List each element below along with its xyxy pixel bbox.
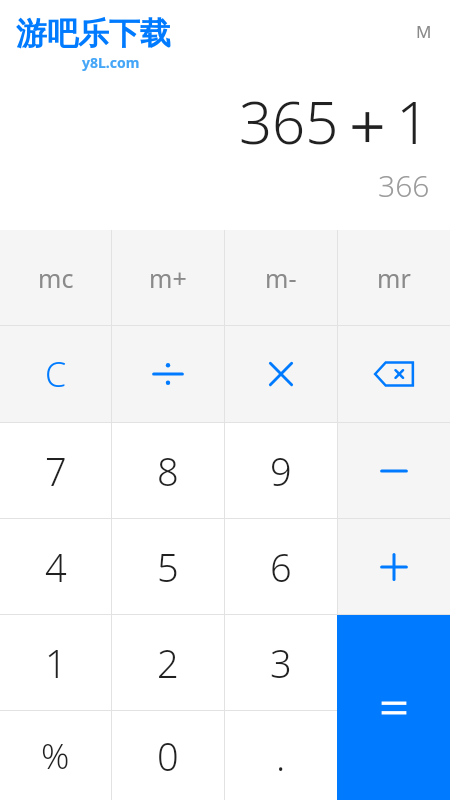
button[interactable]: Plus — [338, 519, 450, 614]
button[interactable]: 1 — [0, 615, 111, 710]
staticText: 365＋1 — [239, 82, 430, 161]
staticText: 0 — [157, 730, 179, 782]
staticText: 8 — [157, 445, 179, 497]
staticText: 9 — [270, 445, 292, 497]
button[interactable]: 5 — [112, 519, 224, 614]
button[interactable]: 3 — [225, 615, 337, 710]
button[interactable]: m+ — [112, 230, 224, 325]
staticText: 4 — [45, 541, 67, 593]
staticText: 366 — [378, 165, 430, 206]
button[interactable]: Backspace — [338, 326, 450, 422]
staticText: 5 — [157, 541, 179, 593]
button[interactable]: Equals — [337, 615, 450, 800]
button[interactable]: C — [0, 326, 111, 422]
button[interactable]: mc — [0, 230, 111, 325]
staticText: y8L.com — [82, 53, 140, 72]
staticText: . — [276, 730, 286, 782]
staticText: 6 — [270, 541, 292, 593]
staticText: 2 — [157, 637, 179, 689]
button[interactable]: % — [0, 711, 111, 800]
button[interactable]: . — [225, 711, 337, 800]
staticText: % — [41, 732, 70, 780]
staticText: M — [416, 20, 432, 43]
button[interactable]: Multiply — [225, 326, 337, 422]
button[interactable]: 6 — [225, 519, 337, 614]
button[interactable]: 4 — [0, 519, 111, 614]
staticText: mc — [38, 261, 74, 295]
button[interactable]: 8 — [112, 423, 224, 518]
button[interactable]: 2 — [112, 615, 224, 710]
staticText: 3 — [270, 637, 292, 689]
staticText: C — [45, 351, 67, 397]
staticText: m- — [265, 261, 297, 295]
staticText: 7 — [45, 445, 67, 497]
button[interactable]: 0 — [112, 711, 224, 800]
staticText: 游吧乐下载 — [16, 14, 171, 53]
button[interactable]: 9 — [225, 423, 337, 518]
staticText: m+ — [149, 261, 187, 295]
staticText: mr — [377, 261, 411, 295]
button[interactable]: Divide — [112, 326, 224, 422]
staticText: 1 — [45, 637, 67, 689]
button[interactable]: 7 — [0, 423, 111, 518]
button[interactable]: Minus — [338, 423, 450, 518]
button[interactable]: m- — [225, 230, 337, 325]
button[interactable]: mr — [338, 230, 450, 325]
